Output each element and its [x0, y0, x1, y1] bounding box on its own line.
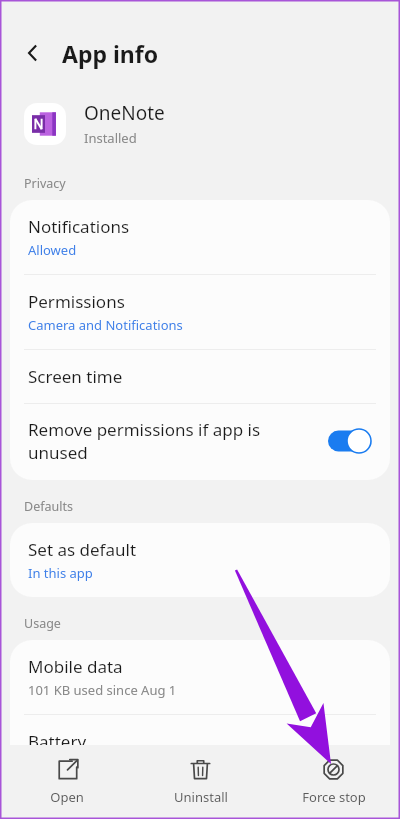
staticText: Screen time: [28, 365, 123, 388]
staticText: Notifications: [28, 215, 130, 238]
button[interactable]: Set as default: [10, 523, 390, 597]
staticText: Allowed: [28, 241, 77, 259]
staticText: Set as default: [28, 538, 137, 561]
button[interactable]: Screen time: [10, 350, 390, 403]
staticText: Defaults: [24, 498, 73, 515]
button[interactable]: Permissions: [10, 275, 390, 349]
staticText: 101 KB used since Aug 1: [28, 681, 177, 699]
button[interactable]: Open: [0, 752, 134, 812]
button[interactable]: Uninstall: [134, 752, 267, 812]
staticText: OneNote: [84, 100, 165, 126]
staticText: Camera and Notifications: [28, 316, 183, 334]
staticText: Force stop: [302, 788, 366, 806]
staticText: Usage: [24, 615, 61, 632]
staticText: In this app: [28, 564, 93, 582]
staticText: Uninstall: [174, 788, 228, 806]
staticText: App info: [62, 38, 159, 69]
button[interactable]: Force stop: [267, 752, 400, 812]
staticText: Battery: [28, 730, 87, 753]
button[interactable]: Notifications: [10, 200, 390, 274]
staticText: Open: [50, 788, 84, 806]
button[interactable]: Mobile data: [10, 640, 390, 714]
staticText: Permissions: [28, 290, 125, 313]
button[interactable]: Remove permissions if app is unused: [10, 404, 390, 480]
staticText: Installed: [84, 129, 137, 147]
other: Remove permissions toggle: [328, 428, 372, 454]
button[interactable]: Back: [18, 38, 48, 68]
staticText: Mobile data: [28, 655, 123, 678]
button[interactable]: Battery: [10, 715, 390, 789]
staticText: No usage since last full charge: [28, 756, 214, 774]
staticText: Privacy: [24, 175, 66, 192]
staticText: Remove permissions if app is unused: [28, 418, 320, 464]
